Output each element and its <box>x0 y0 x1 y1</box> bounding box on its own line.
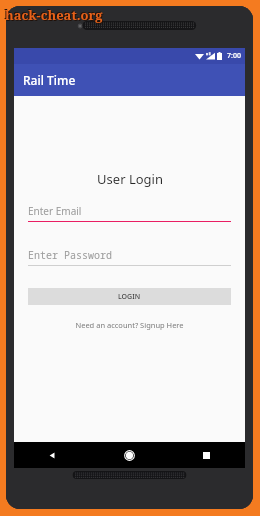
button[interactable]: Enter Password <box>28 248 231 266</box>
staticText: Need an account? Signup Here <box>75 320 184 330</box>
button[interactable]: Need an account? Signup Here <box>75 320 184 330</box>
staticText: Rail Time <box>23 72 76 88</box>
staticText: Enter Password <box>28 248 112 262</box>
staticText: hack-cheat.org <box>6 7 104 25</box>
button[interactable]: LOGIN <box>28 288 231 305</box>
button[interactable]: Enter Email <box>28 204 231 222</box>
button[interactable]: Home <box>91 442 168 468</box>
staticText: hack-cheat.org <box>4 5 102 23</box>
button[interactable]: Back <box>14 442 91 468</box>
staticText: Enter Email <box>28 204 82 218</box>
staticText: LOGIN <box>118 292 141 302</box>
staticText: 7:00 <box>227 51 241 61</box>
staticText: hack-cheat.org <box>5 6 103 24</box>
button[interactable]: Recent apps <box>168 442 245 468</box>
staticText: User Login <box>97 170 163 188</box>
